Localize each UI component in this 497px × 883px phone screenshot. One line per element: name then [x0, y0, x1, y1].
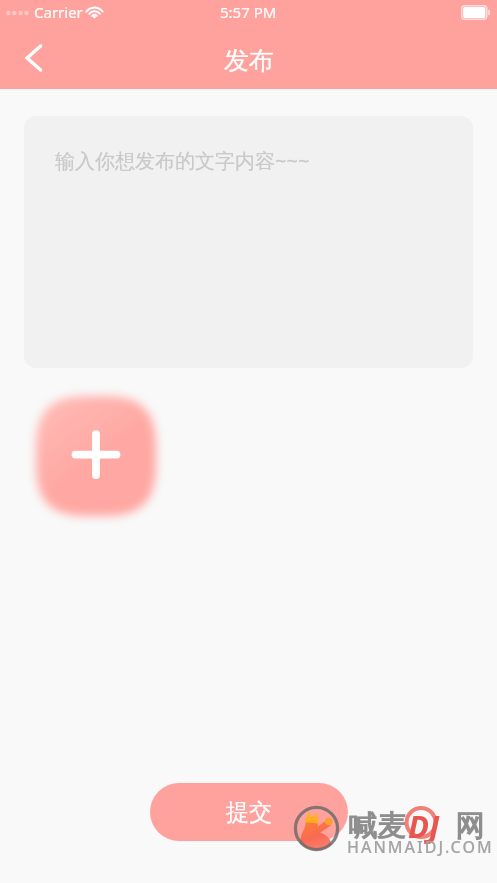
staticText: 输入你想发布的文字内容~~~: [55, 147, 310, 174]
button[interactable]: Back: [11, 35, 57, 81]
staticText: 5:57 PM: [220, 2, 277, 22]
staticText: Carrier: [34, 2, 83, 22]
button[interactable]: 提交: [150, 783, 348, 841]
staticText: 网: [455, 808, 484, 845]
button[interactable]: Add image: [30, 390, 162, 522]
staticText: 喊麦: [348, 808, 406, 845]
staticText: 发布: [224, 45, 274, 76]
staticText: DJ: [408, 805, 440, 847]
staticText: 提交: [226, 798, 272, 827]
button[interactable]: 输入你想发布的文字内容~~~: [24, 116, 473, 368]
staticText: HANMAIDJ.COM: [347, 836, 494, 858]
